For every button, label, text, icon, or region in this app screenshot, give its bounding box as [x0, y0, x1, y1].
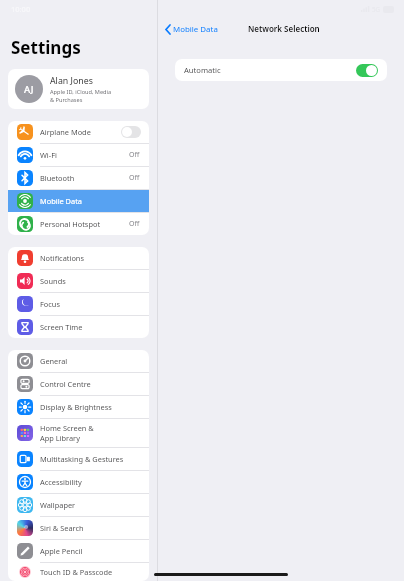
staticText: Notifications — [40, 253, 84, 263]
staticText: AJ — [24, 83, 34, 96]
button[interactable]: Wi-Fi — [8, 144, 149, 166]
staticText: Apple Pencil — [40, 546, 83, 556]
button[interactable]: Siri & Search — [8, 517, 149, 539]
button[interactable]: Airplane Mode toggle, off — [121, 126, 141, 138]
button[interactable]: Screen Time — [8, 316, 149, 338]
staticText: Multitasking & Gestures — [40, 454, 124, 464]
staticText: Network Selection — [248, 23, 320, 34]
staticText: Wallpaper — [40, 500, 76, 510]
button[interactable]: Mobile Data — [8, 190, 149, 212]
button[interactable]: Automatic toggle, on — [356, 64, 378, 77]
button[interactable]: AJ — [8, 69, 149, 109]
staticText: Settings — [11, 36, 81, 59]
button[interactable]: Focus — [8, 293, 149, 315]
staticText: Siri & Search — [40, 523, 84, 533]
button[interactable]: General — [8, 350, 149, 372]
button[interactable]: Bluetooth — [8, 167, 149, 189]
staticText: Automatic — [184, 65, 356, 75]
button[interactable]: Mobile Data — [158, 20, 224, 38]
button[interactable]: Notifications — [8, 247, 149, 269]
button[interactable]: Apple Pencil — [8, 540, 149, 562]
staticText: Alan Jones — [50, 75, 93, 87]
staticText: Off — [129, 219, 140, 229]
button[interactable]: Automatic — [175, 59, 387, 81]
staticText: Wi-Fi — [40, 150, 57, 160]
staticText: Mobile Data — [173, 24, 218, 35]
staticText: Accessibility — [40, 477, 82, 487]
button[interactable]: Multitasking & Gestures — [8, 448, 149, 470]
button[interactable]: Personal Hotspot — [8, 213, 149, 235]
staticText: Control Centre — [40, 379, 91, 389]
button[interactable]: Accessibility — [8, 471, 149, 493]
button[interactable]: Sounds — [8, 270, 149, 292]
staticText: App Library — [40, 433, 80, 443]
staticText: Personal Hotspot — [40, 219, 101, 229]
button[interactable]: Airplane Mode — [8, 121, 149, 143]
button[interactable]: Touch ID & Passcode — [8, 563, 149, 581]
staticText: Display & Brightness — [40, 402, 112, 412]
staticText: Airplane Mode — [40, 127, 91, 137]
staticText: Bluetooth — [40, 173, 75, 183]
button[interactable]: Home Screen & — [8, 419, 149, 447]
staticText: Apple ID, iCloud, Media & Purchases — [50, 88, 112, 103]
staticText: General — [40, 356, 68, 366]
staticText: Screen Time — [40, 322, 83, 332]
staticText: Focus — [40, 299, 60, 309]
staticText: Off — [129, 150, 140, 160]
button[interactable]: Display & Brightness — [8, 396, 149, 418]
staticText: Off — [129, 173, 140, 183]
staticText: Sounds — [40, 276, 66, 286]
staticText: Home Screen & — [40, 423, 94, 433]
button[interactable]: Control Centre — [8, 373, 149, 395]
staticText: Mobile Data — [40, 196, 82, 206]
button[interactable]: Wallpaper — [8, 494, 149, 516]
staticText: Touch ID & Passcode — [40, 567, 113, 577]
